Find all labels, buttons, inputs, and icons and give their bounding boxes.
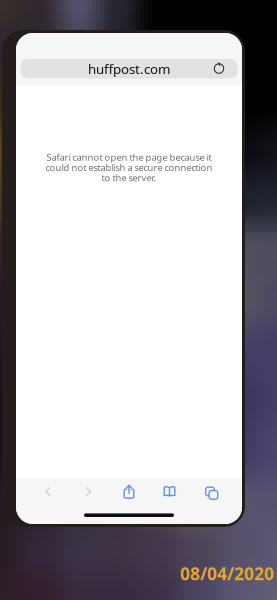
- button[interactable]: Bookmarks: [153, 479, 185, 503]
- button[interactable]: Forward: [72, 479, 104, 503]
- staticText: to the server.: [101, 171, 156, 184]
- button[interactable]: huffpost.com: [20, 59, 237, 78]
- button[interactable]: Back: [32, 479, 64, 503]
- button[interactable]: Share: [113, 479, 145, 503]
- staticText: Safari cannot open the page because it: [46, 151, 211, 163]
- staticText: 08/04/2020: [180, 562, 274, 585]
- button[interactable]: Tabs: [194, 479, 226, 503]
- staticText: could not establish a secure connection: [45, 161, 212, 174]
- staticText: huffpost.com: [88, 60, 170, 78]
